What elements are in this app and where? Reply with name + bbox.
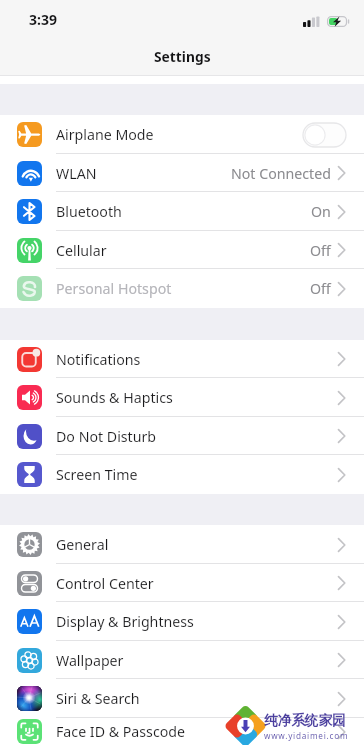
staticText: Do Not Disturb bbox=[56, 427, 157, 446]
button[interactable]: Personal Hotspot bbox=[0, 269, 364, 308]
staticText: Personal Hotspot bbox=[56, 279, 172, 298]
staticText: WLAN bbox=[56, 164, 97, 183]
staticText: Off bbox=[310, 279, 331, 298]
button[interactable]: Siri & Search bbox=[0, 679, 364, 718]
button[interactable]: Do Not Disturb bbox=[0, 417, 364, 455]
button[interactable]: Airplane Mode bbox=[0, 115, 364, 154]
staticText: Settings bbox=[154, 47, 211, 66]
staticText: Siri & Search bbox=[56, 689, 140, 708]
staticText: Airplane Mode bbox=[56, 125, 154, 144]
staticText: Control Center bbox=[56, 574, 154, 593]
button[interactable]: WLAN bbox=[0, 154, 364, 192]
button[interactable]: Screen Time bbox=[0, 455, 364, 494]
button[interactable]: Control Center bbox=[0, 564, 364, 602]
button[interactable]: Wallpaper bbox=[0, 641, 364, 679]
staticText: www.yidaimei.com bbox=[264, 730, 349, 741]
staticText: Notifications bbox=[56, 350, 141, 369]
staticText: Screen Time bbox=[56, 465, 138, 484]
button[interactable]: Bluetooth bbox=[0, 192, 364, 231]
button[interactable]: Notifications bbox=[0, 340, 364, 378]
button[interactable]: General bbox=[0, 525, 364, 564]
staticText: Wallpaper bbox=[56, 651, 124, 670]
staticText: Not Connected bbox=[231, 164, 331, 183]
button[interactable]: Sounds & Haptics bbox=[0, 378, 364, 417]
staticText: General bbox=[56, 535, 109, 554]
button[interactable]: Cellular bbox=[0, 231, 364, 269]
staticText: Face ID & Passcode bbox=[56, 722, 186, 741]
staticText: Off bbox=[310, 241, 331, 260]
staticText: On bbox=[311, 202, 331, 221]
staticText: 3:39 bbox=[29, 10, 57, 29]
staticText: Bluetooth bbox=[56, 202, 122, 221]
staticText: Display & Brightness bbox=[56, 612, 194, 631]
staticText: Cellular bbox=[56, 241, 107, 260]
staticText: 纯净系统家园 bbox=[264, 712, 346, 729]
staticText: Sounds & Haptics bbox=[56, 388, 173, 407]
button[interactable]: Face ID & Passcode bbox=[0, 718, 364, 745]
button[interactable]: Display & Brightness bbox=[0, 602, 364, 641]
